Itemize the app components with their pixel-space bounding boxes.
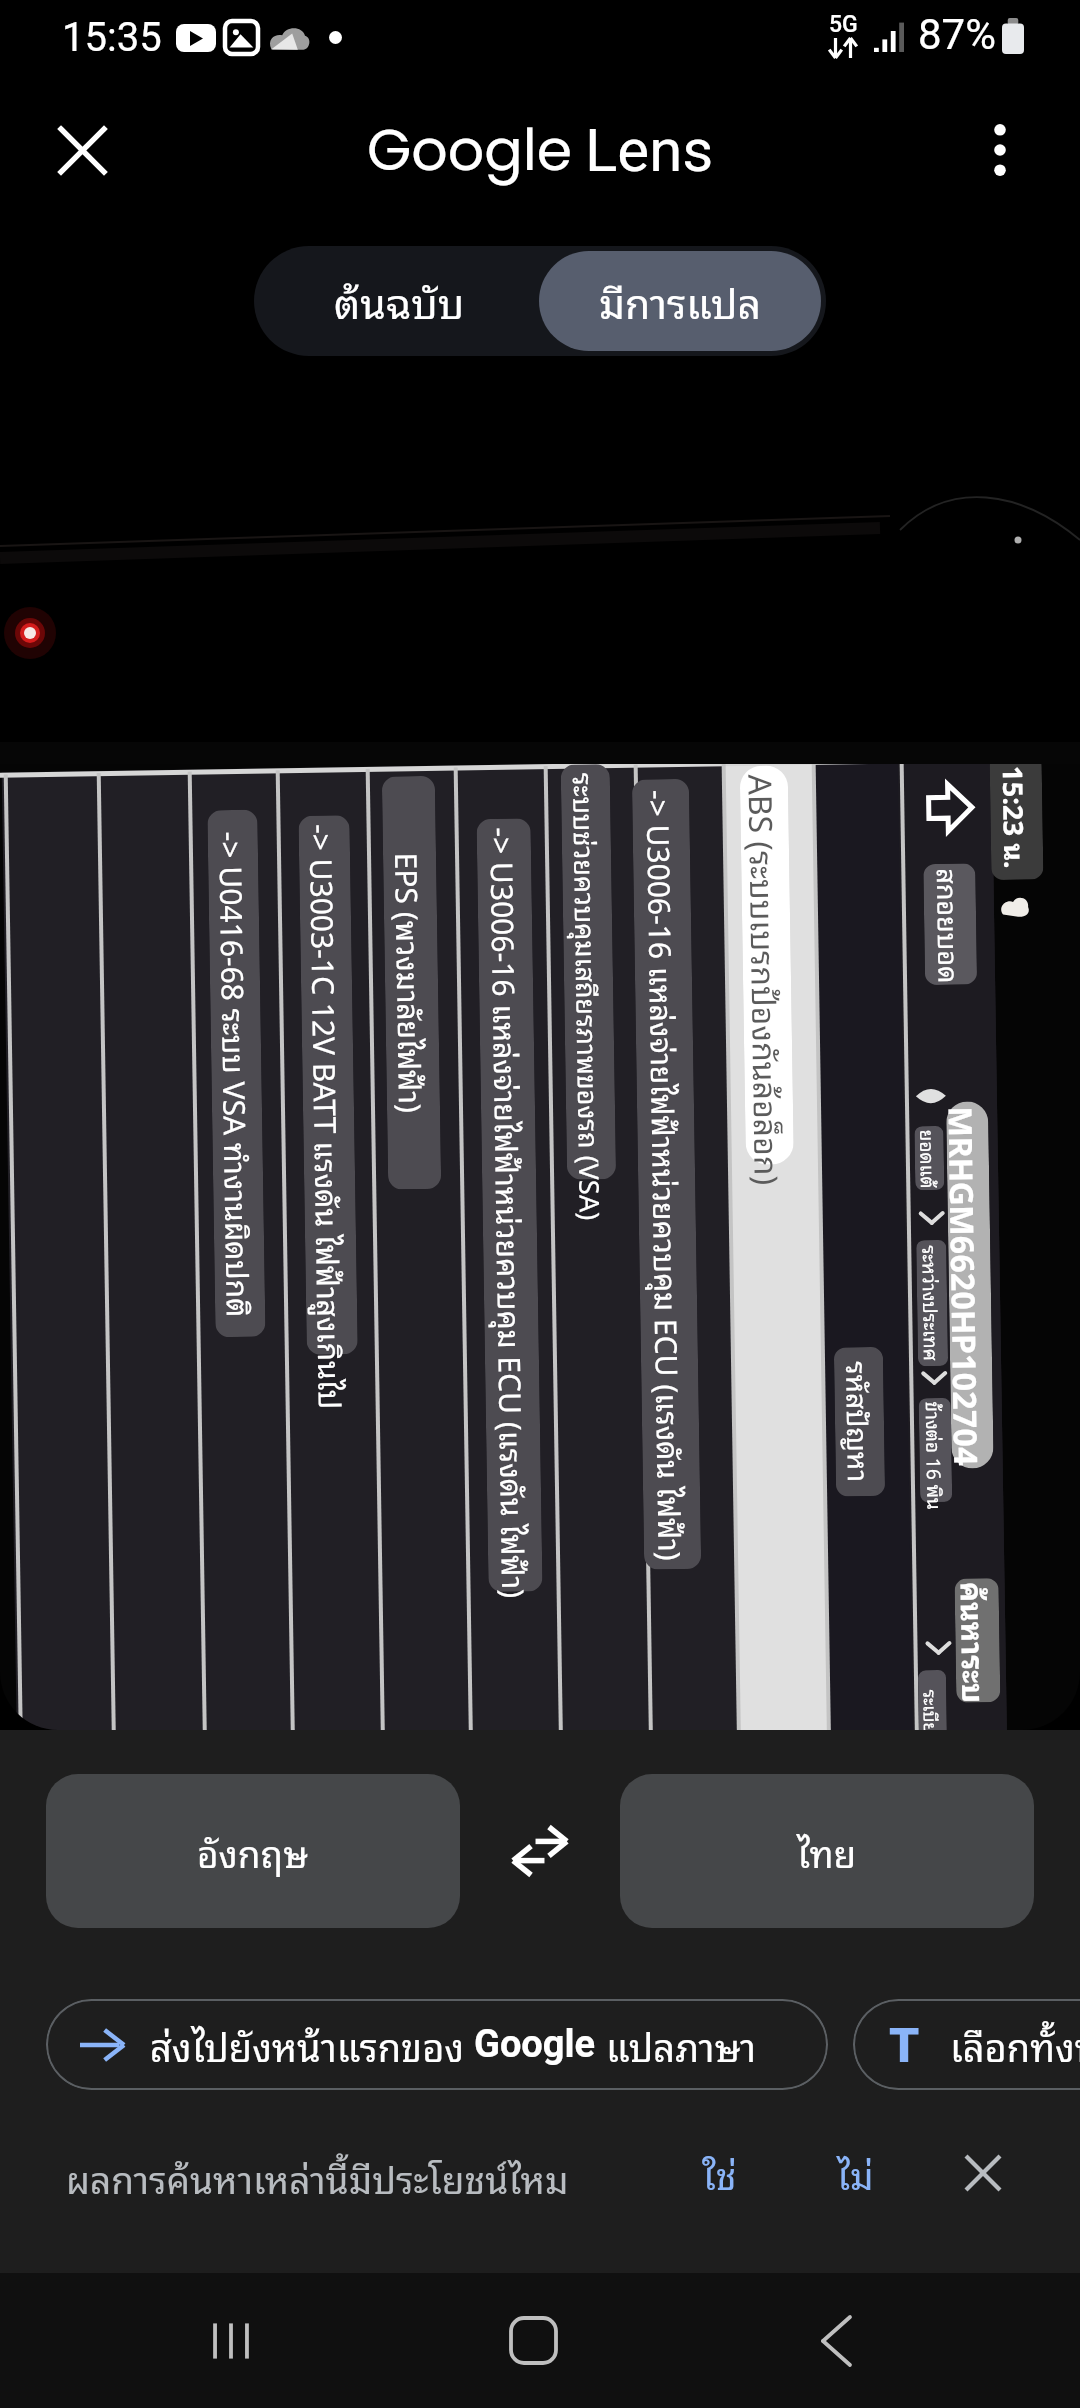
staticText: ไทย (797, 1822, 857, 1881)
staticText: 87% (918, 10, 996, 59)
staticText: ส่งไปยังหน้าแรกของ (150, 2014, 474, 2075)
staticText: -> U0416-68 ระบบ VSA ทำงานผิดปกติ (209, 831, 265, 1318)
button[interactable]: Dismiss (940, 2130, 1026, 2216)
staticText: MRHGM6620HP102704 (946, 1106, 994, 1465)
staticText: มีการแปล (599, 268, 762, 334)
staticText: EPS (พวงมาลัยไฟฟ้า) (385, 852, 437, 1113)
staticText: ต้นฉบับ (334, 268, 465, 334)
button[interactable]: ส่งไปยังหน้าแรกของ (46, 1999, 828, 2090)
staticText: ข้างต่อ 16 พิน (920, 1401, 951, 1499)
button[interactable]: T (853, 1999, 1080, 2090)
button[interactable]: Back (780, 2273, 892, 2408)
staticText: Lens (585, 115, 714, 185)
button[interactable]: Home (477, 2273, 589, 2408)
staticText: ไม่ (837, 2144, 874, 2203)
staticText: ใช่ (702, 2144, 737, 2203)
staticText: ยอดแต้ (915, 1129, 945, 1188)
staticText: แปลภาษา (596, 2014, 756, 2075)
button[interactable]: ต้นฉบับ (259, 251, 539, 351)
button[interactable]: Translated camera view (0, 742, 1080, 1730)
staticText: สกอยบอด (928, 868, 973, 982)
staticText: ABS (ระบบเบรกป้องกันล้อล็อก) (740, 774, 794, 1157)
button[interactable]: ใช่ (672, 2130, 766, 2216)
staticText: -> U3006-16 แหล่งจ่ายไฟฟ้าหน่วยควบคุม EC… (636, 789, 697, 1561)
staticText: ระหว่างประเทศ (916, 1245, 948, 1361)
staticText: -> U3006-16 แหล่งจ่ายไฟฟ้าหน่วยควบคุม EC… (480, 827, 540, 1584)
staticText: T (889, 2017, 920, 2073)
staticText: ผลการค้นหาเหล่านี้มีประโยชน์ไหม (66, 2148, 569, 2207)
staticText: 15:35 (62, 14, 162, 61)
button[interactable]: Recent apps (175, 2273, 287, 2408)
staticText: -> U3003-1C 12V BATT แรงดัน ไฟฟ้าสูงเกิน… (299, 823, 356, 1347)
button[interactable]: More options (944, 94, 1056, 206)
staticText: 15:23 น. (994, 765, 1038, 869)
staticText: Google (367, 110, 573, 190)
button[interactable]: Close (26, 94, 138, 206)
button[interactable]: Swap languages (478, 1818, 602, 1884)
staticText: ระเบียนการ (918, 1689, 947, 1730)
button[interactable]: มีการแปล (539, 251, 821, 351)
button[interactable]: ไทย (620, 1774, 1034, 1928)
staticText: Google (474, 2022, 596, 2067)
staticText: เลือกทั้งหมด (950, 2014, 1080, 2075)
staticText: อังกฤษ (197, 1822, 309, 1881)
button[interactable]: ไม่ (812, 2130, 898, 2216)
staticText: ระบบช่วยควบคุมเสถียรภาพของรถ (VSA) (564, 772, 613, 1172)
staticText: ค้นหาระบ (954, 1581, 1000, 1700)
button[interactable]: อังกฤษ (46, 1774, 460, 1928)
staticText: รหัสปัญหา (836, 1361, 883, 1483)
staticText: 5G (829, 11, 858, 38)
